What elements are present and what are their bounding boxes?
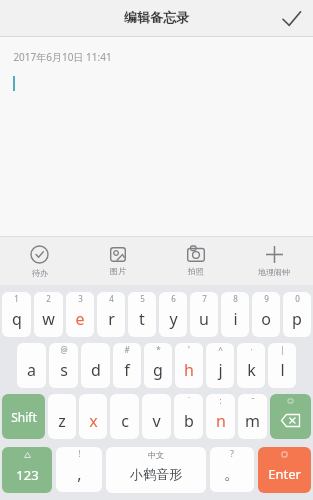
staticText: 中文 [148, 450, 164, 460]
button[interactable]: 8 [221, 292, 249, 337]
staticText: 拍照 [188, 266, 204, 276]
button[interactable]: d [81, 343, 110, 388]
staticText: · [250, 344, 253, 355]
staticText: i [233, 308, 238, 330]
button[interactable]: 3 [66, 292, 94, 337]
button[interactable]: * [144, 343, 172, 388]
staticText: t [139, 308, 145, 330]
button[interactable]: ' [175, 343, 203, 388]
staticText: 待办 [32, 268, 48, 278]
staticText: ˉ [251, 395, 255, 406]
button[interactable]: 5 [128, 292, 156, 337]
button[interactable] [269, 0, 313, 36]
staticText: w [42, 308, 55, 330]
button[interactable]: 中文 [106, 447, 206, 493]
staticText: a [27, 359, 36, 381]
button[interactable]: 7 [190, 292, 218, 337]
staticText: 编辑备忘录 [124, 9, 189, 25]
staticText: 6 [171, 293, 176, 304]
staticText: * [156, 344, 161, 355]
button[interactable]: 4 [97, 292, 125, 337]
staticText: f [124, 359, 130, 381]
staticText: Shift [11, 409, 37, 425]
staticText: ^ [218, 344, 223, 355]
button[interactable]: ˉ [238, 394, 267, 439]
staticText: Enter [268, 465, 301, 483]
button[interactable]: ? [210, 447, 254, 492]
staticText: s [60, 359, 68, 381]
staticText: j [218, 359, 223, 381]
staticText: 8 [233, 293, 238, 304]
staticText: g [153, 359, 163, 381]
button[interactable]: 9 [252, 292, 280, 337]
staticText: 4 [109, 293, 114, 304]
button[interactable]: z [48, 394, 76, 439]
button[interactable]: ! [56, 447, 102, 492]
button[interactable]: ^ [206, 343, 234, 388]
staticText: 5 [140, 293, 145, 304]
button[interactable]: | [268, 343, 296, 388]
staticText: b [184, 410, 194, 432]
button[interactable]: c [110, 394, 139, 439]
button[interactable]: Shift [2, 394, 45, 439]
button[interactable]: 待办 [0, 237, 79, 285]
staticText: 7 [202, 293, 207, 304]
staticText: e [75, 308, 85, 330]
button[interactable]: x [79, 394, 107, 439]
button[interactable]: @ [49, 343, 78, 388]
button[interactable]: 6 [159, 292, 187, 337]
button[interactable] [270, 394, 311, 439]
staticText: z [58, 410, 66, 432]
staticText: 9 [264, 293, 269, 304]
staticText: m [245, 410, 260, 432]
button[interactable]: # [113, 343, 141, 388]
staticText: 小鹤音形 [130, 466, 182, 482]
staticText: k [247, 359, 256, 381]
staticText: ' [188, 344, 190, 355]
staticText: 3 [78, 293, 83, 304]
staticText: @ [60, 344, 68, 355]
staticText: q [12, 308, 22, 330]
button[interactable]: · [237, 343, 265, 388]
button[interactable]: 图片 [79, 237, 157, 285]
staticText: r [108, 308, 115, 330]
button[interactable]: 1 [2, 292, 31, 337]
staticText: 2 [46, 293, 51, 304]
staticText: n [216, 410, 226, 432]
button[interactable]: ˙ [174, 394, 203, 439]
button[interactable]: 123 [2, 447, 52, 493]
button[interactable]: : [206, 394, 235, 439]
staticText: , [77, 463, 82, 485]
staticText: o [261, 308, 271, 330]
staticText: 。 [224, 464, 240, 484]
button[interactable]: 拍照 [157, 237, 235, 285]
staticText: l [280, 359, 285, 381]
staticText: d [91, 359, 101, 381]
staticText: ˙ [188, 395, 190, 406]
staticText: 地理闹钟 [258, 267, 290, 277]
staticText: : [219, 395, 222, 406]
button[interactable]: a [17, 343, 46, 388]
staticText: p [292, 308, 302, 330]
staticText: v [152, 410, 161, 432]
staticText: 0 [295, 293, 300, 304]
button[interactable]: 地理闹钟 [235, 237, 313, 285]
button[interactable]: 0 [283, 292, 311, 337]
staticText: | [280, 344, 285, 355]
staticText: 1 [14, 293, 19, 304]
staticText: c [121, 410, 129, 432]
staticText: y [169, 308, 178, 330]
staticText: u [199, 308, 209, 330]
staticText: 2017年6月10日 11:41 [13, 50, 112, 64]
button[interactable]: v [142, 394, 171, 439]
staticText: # [124, 344, 130, 355]
button[interactable]: Enter [258, 447, 311, 493]
staticText: x [89, 410, 98, 432]
staticText: h [184, 359, 194, 381]
button[interactable]: 2 [34, 292, 63, 337]
staticText: ? [230, 448, 234, 459]
staticText: 123 [16, 466, 39, 484]
staticText: 图片 [110, 266, 126, 276]
staticText: ! [78, 448, 81, 459]
